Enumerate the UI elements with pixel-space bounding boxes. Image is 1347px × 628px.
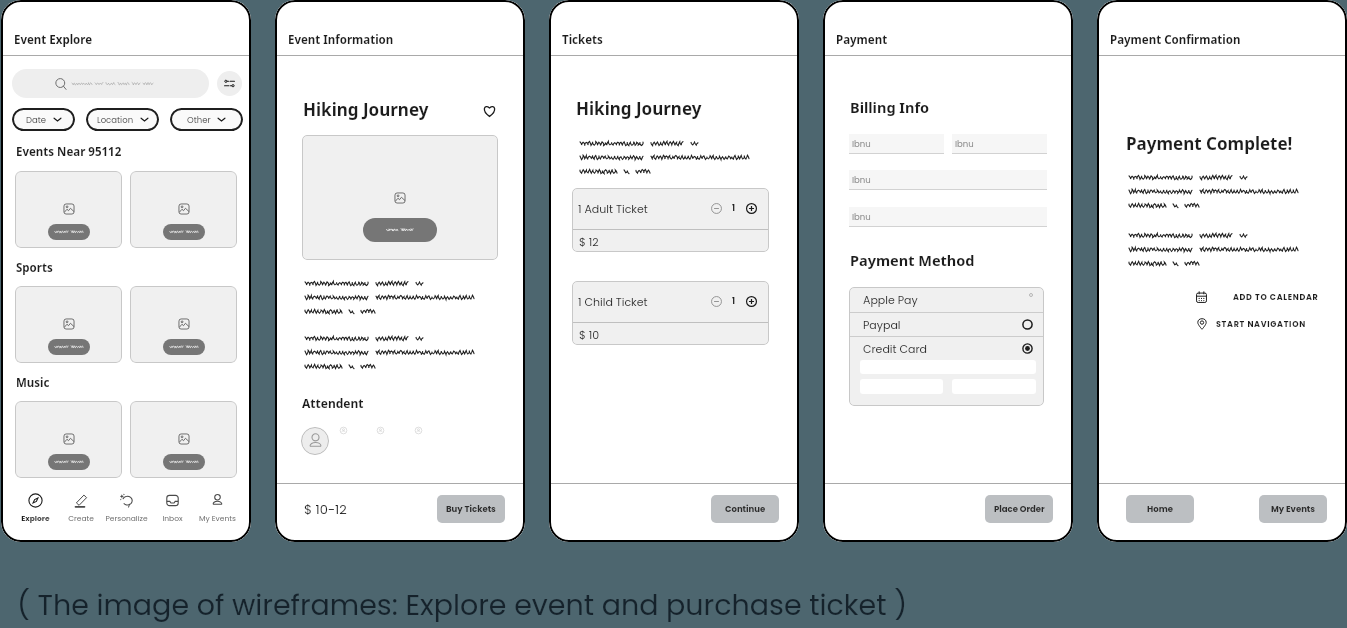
staticText: Personalize xyxy=(105,513,148,523)
button[interactable]: Favorite xyxy=(481,102,497,118)
button[interactable] xyxy=(15,171,122,248)
staticText: My Events xyxy=(199,513,236,523)
button[interactable]: Personalize xyxy=(104,492,148,524)
staticText: $ 10 xyxy=(579,327,600,342)
staticText: Music xyxy=(16,375,50,391)
button[interactable]: Explore xyxy=(13,492,57,524)
button[interactable]: Location xyxy=(86,108,159,131)
button[interactable] xyxy=(12,69,209,98)
staticText: 1 Adult Ticket xyxy=(578,201,648,216)
staticText: Tickets xyxy=(562,32,603,48)
button[interactable]: My Events xyxy=(1259,495,1327,523)
button[interactable]: Ibnu xyxy=(849,170,1047,190)
staticText: 1 Child Ticket xyxy=(578,294,648,309)
button[interactable]: Continue xyxy=(711,495,779,523)
button[interactable]: Buy Tickets xyxy=(437,495,505,523)
staticText: Location xyxy=(97,114,134,126)
staticText: Explore xyxy=(21,513,50,523)
staticText: My Events xyxy=(1271,503,1316,515)
button[interactable]: Ibnu xyxy=(952,134,1047,154)
button[interactable]: START NAVIGATION xyxy=(1196,318,1306,330)
button[interactable]: ADD TO CALENDAR xyxy=(1195,291,1319,304)
staticText: ADD TO CALENDAR xyxy=(1233,292,1319,303)
button[interactable]: Ibnu xyxy=(849,134,944,154)
staticText: Hiking Journey xyxy=(303,98,429,121)
staticText: Date xyxy=(26,114,47,126)
button[interactable]: Create xyxy=(59,492,103,524)
button[interactable] xyxy=(130,401,237,478)
staticText: $ 10-12 xyxy=(304,500,347,518)
staticText: Sports xyxy=(16,260,53,276)
button[interactable]: Credit Card xyxy=(849,337,1044,360)
button[interactable]: Increase quantity xyxy=(746,203,757,214)
button[interactable] xyxy=(130,286,237,363)
staticText: Attendent xyxy=(302,395,364,411)
button[interactable]: Decrease quantity xyxy=(711,296,722,307)
staticText: Apple Pay xyxy=(863,292,918,307)
button[interactable]: Inbox xyxy=(150,492,194,524)
button[interactable] xyxy=(130,171,237,248)
staticText: Home xyxy=(1147,503,1173,515)
staticText: Ibnu xyxy=(852,138,871,150)
staticText: Continue xyxy=(725,503,766,515)
button[interactable]: Date xyxy=(12,108,75,131)
staticText: Ibnu xyxy=(852,174,871,186)
staticText: Create xyxy=(68,513,94,523)
button[interactable]: Ibnu xyxy=(849,207,1047,227)
staticText: Ibnu xyxy=(852,211,871,223)
staticText: Place Order xyxy=(994,503,1045,515)
button[interactable]: Increase quantity xyxy=(746,296,757,307)
button[interactable]: Apple Pay xyxy=(849,287,1044,312)
button[interactable]: Home xyxy=(1126,495,1194,523)
staticText: Paypal xyxy=(863,317,901,332)
staticText: Credit Card xyxy=(863,341,927,356)
staticText: Hiking Journey xyxy=(576,97,702,120)
staticText: Ibnu xyxy=(955,138,974,150)
button[interactable] xyxy=(15,286,122,363)
staticText: Event Information xyxy=(288,32,394,48)
staticText: 1 xyxy=(732,203,736,214)
staticText: 1 xyxy=(732,296,736,307)
staticText: Payment Complete! xyxy=(1126,132,1293,155)
staticText: ( The image of wireframes: Explore event… xyxy=(17,585,908,625)
button[interactable]: Place Order xyxy=(985,495,1053,523)
staticText: Other xyxy=(187,114,211,126)
button[interactable] xyxy=(15,401,122,478)
staticText: Events Near 95112 xyxy=(16,144,122,160)
button[interactable]: Other xyxy=(170,108,243,131)
staticText: Buy Tickets xyxy=(446,503,496,515)
staticText: Payment Confirmation xyxy=(1110,32,1241,48)
button[interactable]: My Events xyxy=(195,492,239,524)
staticText: Payment xyxy=(836,32,888,48)
staticText: Billing Info xyxy=(850,97,930,117)
staticText: Event Explore xyxy=(14,32,93,48)
staticText: $ 12 xyxy=(579,234,599,249)
staticText: START NAVIGATION xyxy=(1216,319,1306,330)
button[interactable]: Filter xyxy=(217,71,242,96)
button[interactable]: Decrease quantity xyxy=(711,203,722,214)
staticText: Payment Method xyxy=(850,250,975,270)
button[interactable]: Paypal xyxy=(849,313,1044,336)
staticText: Inbox xyxy=(162,513,183,523)
